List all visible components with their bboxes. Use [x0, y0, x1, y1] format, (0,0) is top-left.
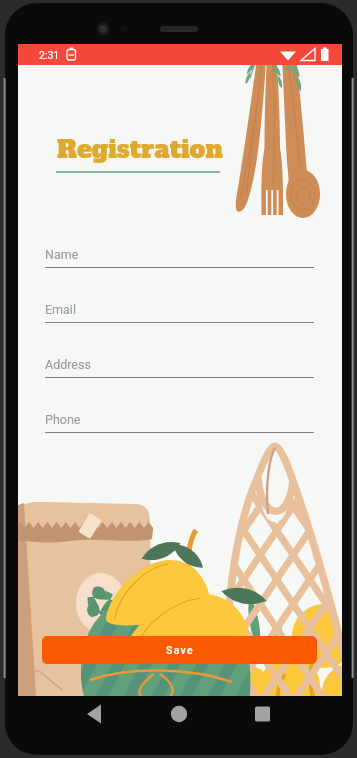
button[interactable]: Address — [45, 357, 314, 412]
staticText: Phone — [45, 412, 81, 427]
button[interactable]: Name — [45, 247, 314, 302]
button[interactable]: Phone — [45, 412, 314, 467]
staticText: Address — [45, 357, 91, 372]
button[interactable]: Save — [42, 636, 317, 664]
staticText: Email — [45, 302, 76, 317]
staticText: Name — [45, 247, 79, 262]
button[interactable]: Email — [45, 302, 314, 357]
staticText: Save — [166, 644, 194, 656]
staticText: 2:31 — [39, 49, 60, 61]
staticText: Registration — [57, 132, 223, 166]
